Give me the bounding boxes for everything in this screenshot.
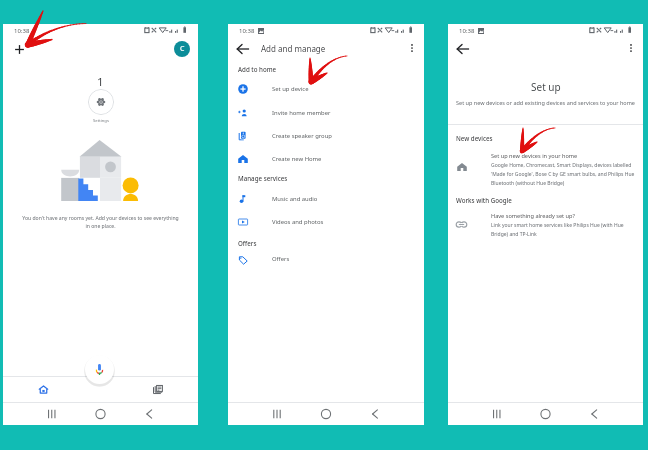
staticText: Works with Google bbox=[456, 196, 512, 204]
button[interactable]: Set up new devices in your home bbox=[448, 150, 643, 190]
button[interactable]: Google Assistant bbox=[85, 355, 114, 384]
staticText: 10:38 bbox=[459, 27, 475, 35]
staticText: Offers bbox=[238, 239, 257, 247]
staticText: 10:38 bbox=[14, 27, 30, 35]
button[interactable]: Account bbox=[174, 41, 190, 57]
staticText: Set up device bbox=[272, 85, 309, 93]
button[interactable]: Home bbox=[19, 377, 68, 402]
staticText: Videos and photos bbox=[272, 218, 324, 226]
button[interactable]: Have something already set up? bbox=[448, 210, 643, 246]
staticText: Settings bbox=[93, 118, 109, 124]
staticText: Set up new devices or add existing devic… bbox=[451, 99, 640, 106]
staticText: Music and audio bbox=[272, 195, 318, 203]
staticText: Add and manage bbox=[261, 43, 326, 54]
staticText: Create speaker group bbox=[272, 132, 332, 140]
staticText: Link your smart home services like Phili… bbox=[491, 222, 638, 238]
staticText: C bbox=[180, 44, 185, 54]
button[interactable]: Videos and photos bbox=[228, 211, 424, 233]
button[interactable]: Offers bbox=[228, 248, 424, 270]
button[interactable]: Invite home member bbox=[228, 102, 424, 124]
staticText: 10:38 bbox=[239, 27, 255, 35]
staticText: You don't have any rooms yet. Add your d… bbox=[13, 215, 188, 229]
button[interactable]: More options bbox=[405, 41, 419, 55]
button[interactable]: Settings bbox=[88, 89, 114, 115]
staticText: Add to home bbox=[238, 65, 277, 73]
button[interactable]: Create new Home bbox=[228, 148, 424, 170]
button[interactable]: Back bbox=[235, 41, 251, 57]
button[interactable]: More options bbox=[624, 41, 638, 55]
button[interactable]: Create speaker group bbox=[228, 125, 424, 147]
button[interactable]: Music and audio bbox=[228, 188, 424, 210]
button[interactable]: Feed bbox=[133, 377, 182, 402]
staticText: Have something already set up? bbox=[491, 212, 575, 220]
staticText: Offers bbox=[272, 255, 290, 263]
staticText: New devices bbox=[456, 134, 493, 142]
staticText: Set up bbox=[531, 80, 561, 94]
staticText: Set up new devices in your home bbox=[491, 152, 578, 160]
button[interactable]: Add bbox=[10, 40, 29, 59]
staticText: Create new Home bbox=[272, 155, 322, 163]
staticText: Manage services bbox=[238, 174, 288, 182]
button[interactable]: Set up device bbox=[228, 78, 424, 100]
staticText: 1 bbox=[97, 74, 104, 90]
staticText: Invite home member bbox=[272, 109, 331, 117]
staticText: Google Home, Chromecast, Smart Displays,… bbox=[491, 162, 638, 187]
button[interactable]: Back bbox=[455, 41, 471, 57]
